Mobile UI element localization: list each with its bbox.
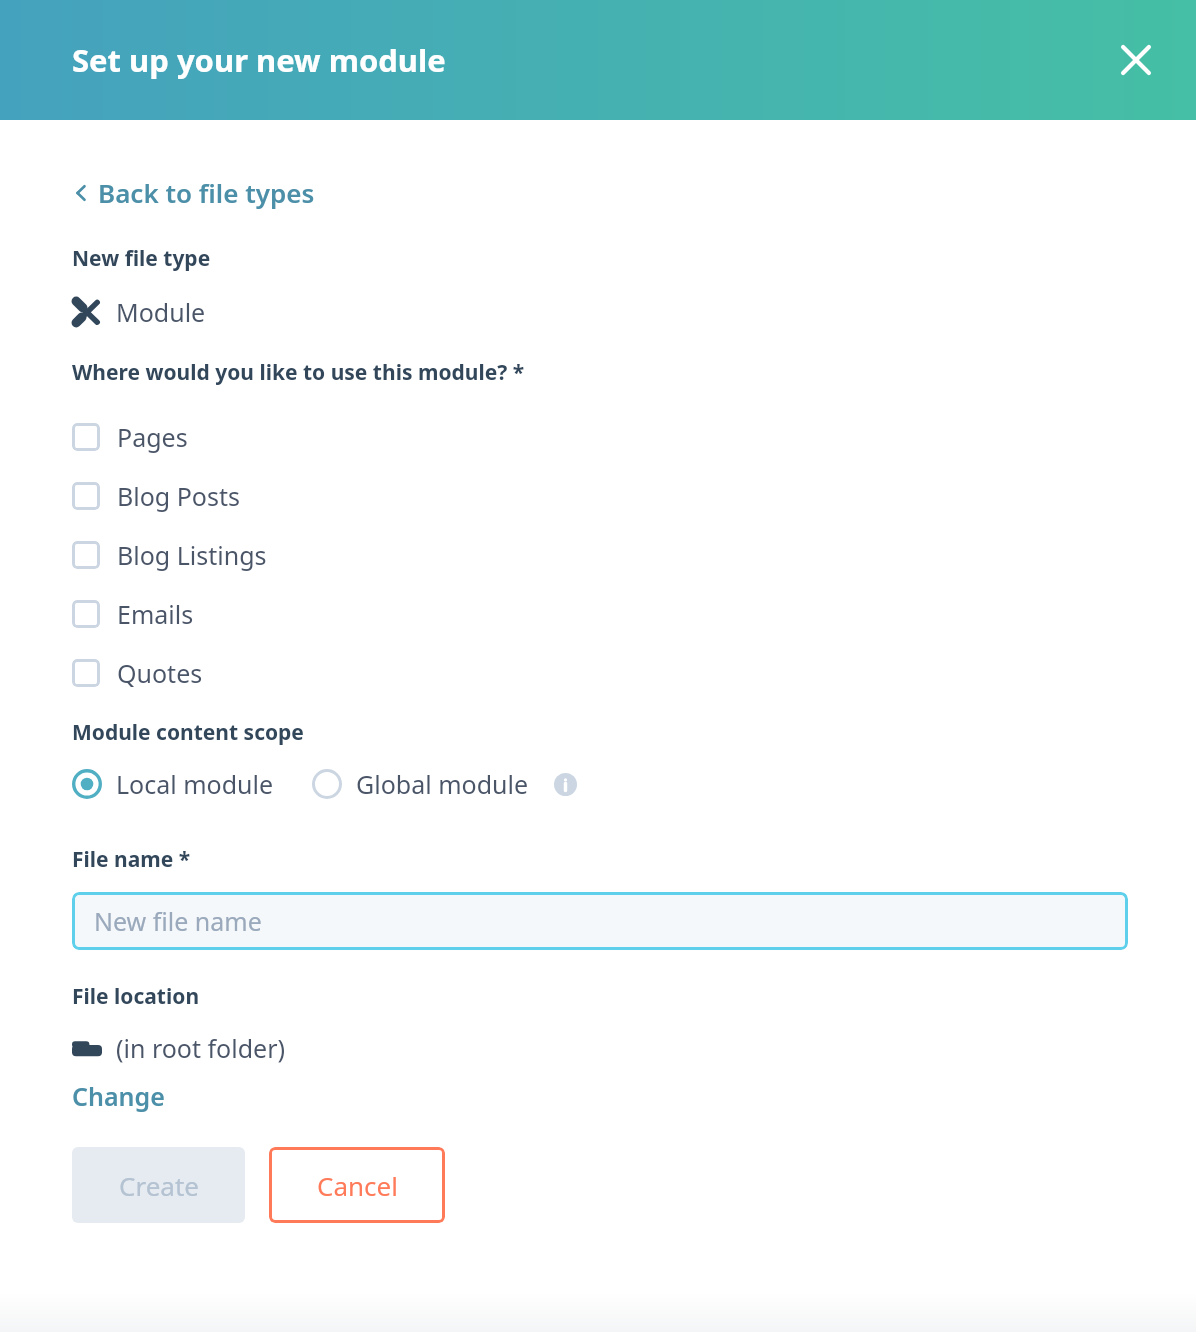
staticText: Module content scope <box>72 718 304 747</box>
button[interactable]: Change <box>72 1077 165 1115</box>
button[interactable]: Emails <box>72 584 1196 643</box>
staticText: Emails <box>117 597 194 631</box>
staticText: Global module <box>356 767 529 801</box>
staticText: Create <box>119 1168 199 1203</box>
button[interactable]: Blog Posts <box>72 466 1196 525</box>
staticText: Where would you like to use this module?… <box>72 358 525 387</box>
button[interactable]: Quotes <box>72 643 1196 702</box>
button[interactable]: Back to file types <box>72 173 317 212</box>
button[interactable]: Pages <box>72 407 1196 466</box>
staticText: File location <box>72 982 200 1011</box>
button[interactable]: Local module <box>72 767 274 801</box>
staticText: Set up your new module <box>72 39 446 81</box>
button[interactable]: More information <box>551 770 579 798</box>
staticText: Pages <box>117 420 188 454</box>
staticText: New file type <box>72 244 211 273</box>
staticText: Cancel <box>317 1168 398 1203</box>
button[interactable]: Global module <box>312 767 529 801</box>
staticText: Module <box>116 295 206 329</box>
staticText: Quotes <box>117 656 203 690</box>
staticText: New file name <box>94 904 262 938</box>
staticText: Blog Listings <box>117 538 267 572</box>
button[interactable]: New file name <box>72 892 1128 950</box>
staticText: Blog Posts <box>117 479 240 513</box>
button[interactable]: Cancel <box>269 1147 445 1223</box>
staticText: Back to file types <box>98 175 315 210</box>
staticText: Local module <box>116 767 274 801</box>
button[interactable]: Create <box>72 1147 245 1223</box>
button[interactable]: Close <box>1110 34 1162 86</box>
staticText: (in root folder) <box>116 1031 285 1065</box>
button[interactable]: Blog Listings <box>72 525 1196 584</box>
staticText: File name * <box>72 845 191 874</box>
